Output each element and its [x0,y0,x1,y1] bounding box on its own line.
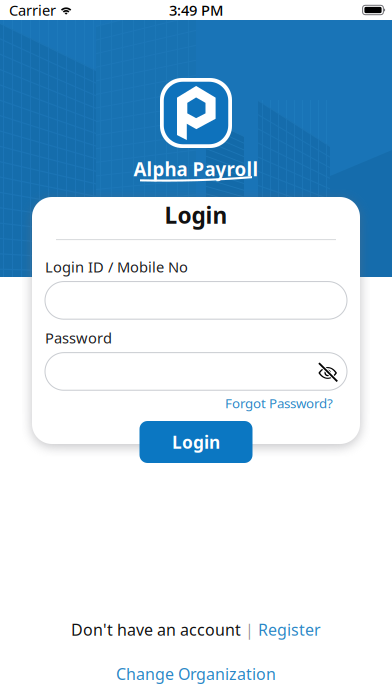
button[interactable]: Register [258,619,321,640]
staticText: Change Organization [116,663,276,684]
staticText: Register [258,619,321,640]
staticText: Password [45,328,112,348]
staticText: Login [164,200,227,230]
staticText: 3:49 PM [169,0,223,20]
button[interactable]: Forgot Password? [32,390,360,412]
staticText: | [245,619,258,640]
staticText: Login [172,430,220,453]
staticText: Carrier [9,0,56,20]
staticText: Forgot Password? [225,394,333,412]
staticText: Don't have an account [71,619,245,640]
button[interactable]: Change Organization [116,663,276,684]
staticText: Alpha Payroll [133,157,258,181]
staticText: Login ID / Mobile No [45,257,188,277]
button[interactable]: Login [139,421,252,463]
button[interactable]: Show password [318,354,347,389]
